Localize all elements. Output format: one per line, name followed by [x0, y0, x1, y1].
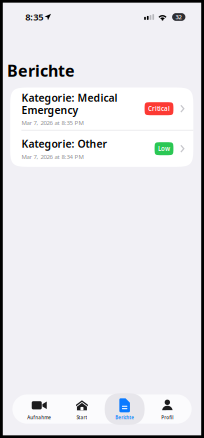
- staticText: Mar 7, 2026 at 8:34 PM: [21, 152, 83, 161]
- staticText: Critical: [148, 104, 170, 113]
- staticText: Kategorie: Medical: [21, 91, 117, 105]
- staticText: Kategorie: Other: [21, 137, 107, 151]
- staticText: 8:35: [25, 11, 43, 23]
- staticText: Profil: [161, 414, 173, 420]
- button[interactable]: Kategorie: Other: [10, 130, 193, 167]
- button[interactable]: Aufnahme: [18, 393, 61, 425]
- staticText: Low: [158, 144, 170, 153]
- button[interactable]: Berichte: [103, 393, 146, 425]
- button[interactable]: Kategorie: Medical: [10, 87, 193, 130]
- staticText: Berichte: [7, 60, 75, 82]
- staticText: Start: [76, 414, 87, 420]
- staticText: Aufnahme: [27, 414, 51, 420]
- staticText: 32: [175, 13, 181, 21]
- button[interactable]: Start: [61, 393, 103, 425]
- staticText: Berichte: [115, 414, 134, 420]
- staticText: Mar 7, 2026 at 8:35 PM: [21, 119, 83, 127]
- button[interactable]: Profil: [146, 393, 189, 425]
- staticText: Emergency: [21, 103, 78, 117]
